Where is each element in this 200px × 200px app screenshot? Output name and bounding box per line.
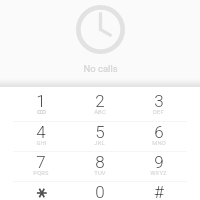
staticText: TUV (94, 170, 106, 177)
button[interactable]: 5 (70, 121, 129, 151)
staticText: DEF (153, 109, 164, 116)
button[interactable]: 2 (70, 90, 129, 120)
staticText: 2 (95, 91, 105, 111)
button[interactable] (12, 181, 70, 200)
staticText: No calls (83, 63, 118, 74)
staticText: 1 (36, 91, 46, 111)
button[interactable]: 7 (12, 151, 70, 181)
button[interactable]: 9 (129, 151, 188, 181)
staticText: # (154, 182, 164, 200)
staticText: 0 (95, 182, 105, 200)
button[interactable]: 3 (129, 90, 188, 120)
staticText: WXYZ (150, 170, 167, 177)
button[interactable]: 8 (70, 151, 129, 181)
staticText: 8 (95, 152, 105, 172)
other: Recent calls (76, 5, 125, 54)
staticText: MNO (152, 140, 166, 147)
button[interactable]: 4 (12, 121, 70, 151)
button[interactable]: # (129, 181, 188, 200)
staticText: 4 (36, 122, 46, 142)
staticText: 6 (154, 122, 164, 142)
button[interactable]: 6 (129, 121, 188, 151)
staticText: GHI (36, 140, 47, 147)
staticText: PQRS (33, 170, 49, 177)
staticText: 9 (154, 152, 164, 172)
button[interactable]: 0 (70, 181, 129, 200)
staticText: 3 (154, 91, 164, 111)
staticText: JKL (94, 140, 105, 147)
button[interactable]: 1 (12, 90, 70, 120)
staticText: 5 (95, 122, 105, 142)
staticText: ABC (94, 109, 106, 116)
staticText: 7 (36, 152, 46, 172)
